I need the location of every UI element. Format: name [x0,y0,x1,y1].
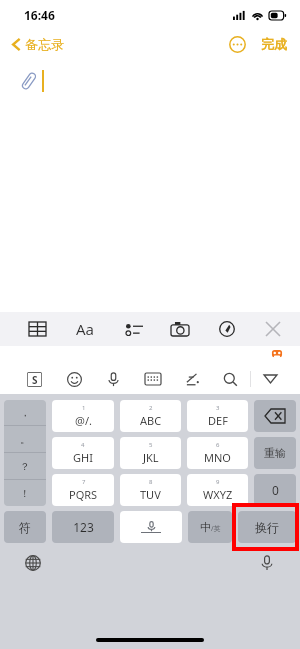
staticText: Aa [76,319,95,339]
staticText: 4 [81,441,85,449]
button[interactable]: Aa [70,314,100,344]
button[interactable]: 3 [187,400,248,432]
button[interactable]: Close [260,316,286,342]
button[interactable]: Keyboard layout [133,364,172,394]
staticText: ， [20,406,30,419]
staticText: WXYZ [203,487,233,502]
staticText: 2 [149,404,153,412]
button[interactable]: 7 [52,474,114,506]
staticText: 换行 [255,520,279,535]
staticText: 符 [19,520,31,535]
button[interactable]: 符 [4,511,46,543]
staticText: 完成 [261,36,287,52]
button[interactable]: Markup [214,316,240,342]
staticText: 备忘录 [25,36,64,52]
button[interactable]: 2 [120,400,181,432]
staticText: S [32,373,38,387]
staticText: 1 [82,404,86,412]
staticText: 7 [82,478,86,486]
staticText: TUV [140,487,161,502]
button[interactable]: 中 [188,511,232,543]
button[interactable]: Table [24,316,50,342]
staticText: 16:46 [24,7,55,23]
staticText: /英 [211,524,221,534]
button[interactable]: Checklist [121,316,147,342]
staticText: GHI [73,450,93,465]
button[interactable]: Change language [22,552,44,574]
staticText: 6 [216,441,220,449]
staticText: PQRS [69,487,98,502]
staticText: JKL [143,450,159,465]
staticText: 8 [149,478,153,486]
button[interactable]: Emoji [54,364,94,394]
button[interactable]: 6 [187,437,248,469]
button[interactable]: 完成 [258,34,290,54]
staticText: ！ [20,487,30,500]
button[interactable]: 备忘录 [8,34,68,54]
staticText: ？ [20,460,30,473]
staticText: 3 [216,404,220,412]
button[interactable]: 重输 [254,437,296,469]
button[interactable]: Assistant [270,347,284,361]
staticText: @/. [75,413,92,428]
staticText: 5 [149,441,153,449]
button[interactable]: Delete [254,400,296,432]
staticText: 重输 [264,446,286,460]
button[interactable]: Sogou [14,364,54,394]
button[interactable]: 8 [120,474,181,506]
button[interactable]: 1 [52,400,114,432]
button[interactable]: Camera [167,316,193,342]
staticText: 0 [272,482,279,498]
button[interactable]: Search [211,364,250,394]
button[interactable]: Space [120,511,182,543]
button[interactable]: Dictation [256,552,278,574]
button[interactable]: ？ [4,453,46,479]
button[interactable]: 4 [52,437,114,469]
button[interactable]: 5 [120,437,181,469]
button[interactable]: 0 [254,474,296,506]
button[interactable]: 。 [4,426,46,452]
staticText: 9 [216,478,220,486]
staticText: ABC [140,413,162,428]
staticText: 123 [73,519,94,535]
staticText: DEF [208,413,228,428]
staticText: 。 [20,433,30,446]
button[interactable]: 123 [52,511,114,543]
button[interactable]: Handwriting [172,364,211,394]
button[interactable]: Hide keyboard [251,364,290,394]
button[interactable]: 换行 [238,511,296,543]
button[interactable]: ！ [4,480,46,506]
button[interactable]: 9 [187,474,248,506]
button[interactable]: ， [4,400,46,425]
button[interactable]: More options [226,33,248,55]
staticText: MNO [204,450,231,465]
staticText: 中 [200,520,211,534]
button[interactable]: Voice input [94,364,133,394]
